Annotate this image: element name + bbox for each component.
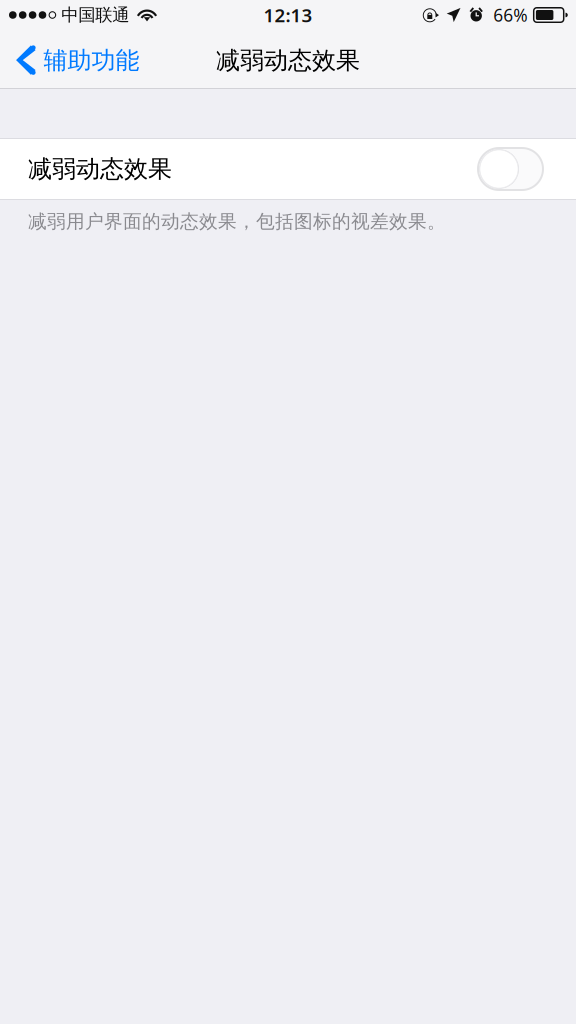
button[interactable]: 返回 辅助功能	[0, 31, 151, 89]
staticText: 减弱动态效果	[216, 46, 360, 75]
staticText: 减弱动态效果	[28, 154, 172, 184]
staticText: 66%	[493, 3, 527, 26]
staticText: 辅助功能	[43, 46, 139, 75]
staticText: 中国联通	[61, 4, 129, 26]
button[interactable]: 关闭	[0, 139, 576, 199]
staticText: 12:13	[263, 3, 312, 27]
staticText: 减弱用户界面的动态效果，包括图标的视差效果。	[28, 210, 446, 233]
